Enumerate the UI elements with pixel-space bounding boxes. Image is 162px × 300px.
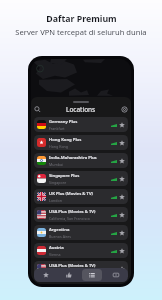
button[interactable]: Hong Kong Plus [34, 135, 128, 150]
staticText: USA Plus (Movies & TV) [49, 209, 96, 215]
staticText: Mumbai [49, 162, 63, 167]
staticText: UK Plus (Movies & TV) [49, 191, 93, 197]
staticText: California, San Francisco [49, 216, 91, 221]
button[interactable]: Settings [119, 104, 130, 115]
button[interactable]: USA Plus (Movies & TV) [34, 261, 128, 276]
staticText: Argentina [49, 227, 70, 233]
staticText: Germany Plus [49, 119, 78, 125]
staticText: Singapore [49, 180, 67, 185]
staticText: Frankfurt [49, 126, 65, 131]
staticText: Buenos Aires [49, 234, 72, 239]
button[interactable]: Streaming [106, 269, 126, 281]
button[interactable]: Recommended [59, 269, 78, 281]
staticText: Hong Kong Plus [49, 137, 82, 143]
button[interactable]: Favorites [36, 269, 55, 281]
button[interactable]: Search [32, 104, 43, 115]
button[interactable]: Austria [34, 243, 128, 258]
staticText: Locations [66, 105, 96, 114]
staticText: Server VPN tercepat di seluruh dunia [15, 27, 147, 37]
staticText: London [49, 198, 62, 203]
button[interactable]: UK Plus (Movies & TV) [34, 189, 128, 204]
staticText: Austria [49, 245, 64, 251]
staticText: Daftar Premium [46, 13, 117, 25]
button[interactable]: USA Plus (Movies & TV) [34, 207, 128, 222]
staticText: USA Plus (Movies & TV) [49, 263, 96, 269]
button[interactable]: Singapore Plus [34, 171, 128, 186]
button[interactable]: All locations [82, 269, 102, 281]
button[interactable]: Argentina [34, 225, 128, 240]
staticText: Hong Kong [49, 144, 69, 149]
button[interactable]: Germany Plus [34, 117, 128, 132]
staticText: Singapore Plus [49, 173, 80, 179]
staticText: Vienna [49, 252, 61, 257]
button[interactable]: India-Maharashtra Plus [34, 153, 128, 168]
staticText: India-Maharashtra Plus [49, 155, 97, 161]
